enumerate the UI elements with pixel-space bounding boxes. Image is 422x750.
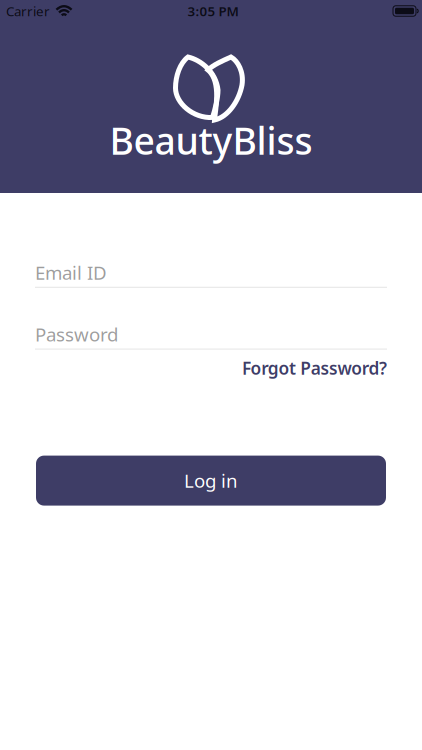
button[interactable]: Email ID [35, 260, 387, 288]
staticText: Password [35, 322, 118, 347]
button[interactable]: Forgot Password? [242, 357, 387, 380]
staticText: Forgot Password? [242, 357, 387, 380]
staticText: Log in [184, 468, 238, 493]
staticText: Email ID [35, 260, 107, 285]
staticText: 3:05 PM [187, 2, 238, 20]
button[interactable]: Log in [36, 456, 386, 506]
staticText: Carrier [6, 2, 50, 20]
staticText: BeautyBliss [109, 115, 312, 165]
button[interactable]: Password [35, 322, 387, 350]
